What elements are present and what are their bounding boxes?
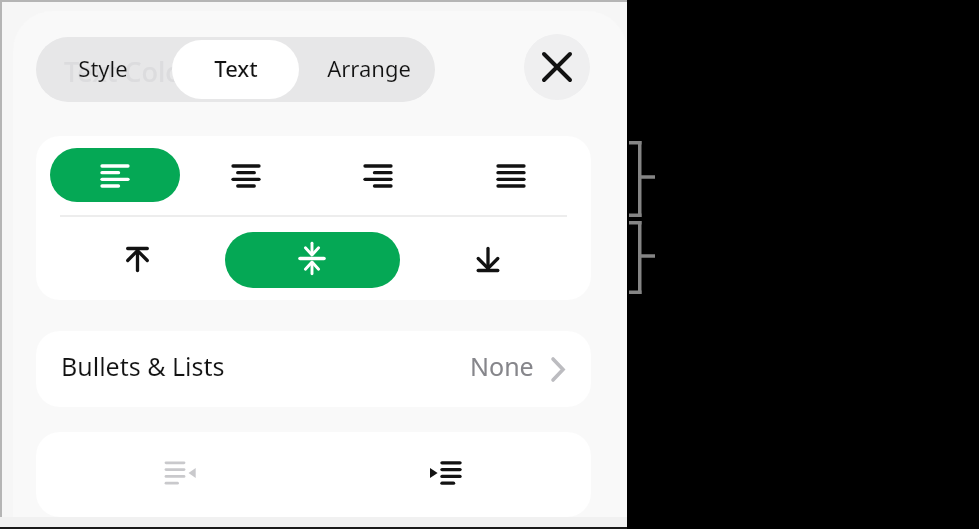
button[interactable]: Align top xyxy=(101,232,173,288)
button[interactable]: Align right xyxy=(342,148,414,202)
button[interactable]: Increase indent xyxy=(396,443,496,501)
button[interactable]: Align left xyxy=(50,148,180,202)
button[interactable]: Text xyxy=(172,40,299,99)
staticText: None xyxy=(470,349,534,383)
staticText: Text xyxy=(214,53,258,83)
button[interactable]: Bullets & Lists xyxy=(36,331,591,407)
button[interactable]: Justify xyxy=(475,148,547,202)
button[interactable]: Arrange xyxy=(305,40,432,99)
button[interactable]: Align bottom xyxy=(452,232,524,288)
staticText: Text Color xyxy=(64,53,194,90)
button[interactable]: Close xyxy=(524,34,590,100)
staticText: Arrange xyxy=(327,53,411,83)
staticText: Bullets & Lists xyxy=(61,349,225,383)
button[interactable]: Style xyxy=(39,40,166,99)
button[interactable]: Align middle xyxy=(225,232,400,288)
button[interactable]: Align center xyxy=(210,148,282,202)
staticText: Style xyxy=(78,53,128,83)
button[interactable]: Decrease indent xyxy=(131,443,231,501)
